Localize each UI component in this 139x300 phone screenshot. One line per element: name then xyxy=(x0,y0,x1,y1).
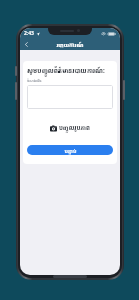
staticText: បន្ទាប់ xyxy=(64,147,77,154)
staticText: ចំណងជើង xyxy=(27,78,42,83)
button[interactable]: បញ្ចូលរូបភាព xyxy=(48,123,92,133)
button[interactable]: Back xyxy=(20,38,32,50)
staticText: របាយការណ៍ xyxy=(56,41,84,48)
staticText: បញ្ចូលរូបភាព xyxy=(59,124,90,132)
button[interactable] xyxy=(27,85,113,109)
button[interactable]: បន្ទាប់ xyxy=(27,145,113,155)
staticText: សូមបញ្ចូលព័ត៌មានរបាយការណ៍: xyxy=(27,66,105,74)
staticText: 2:43 xyxy=(24,30,34,37)
